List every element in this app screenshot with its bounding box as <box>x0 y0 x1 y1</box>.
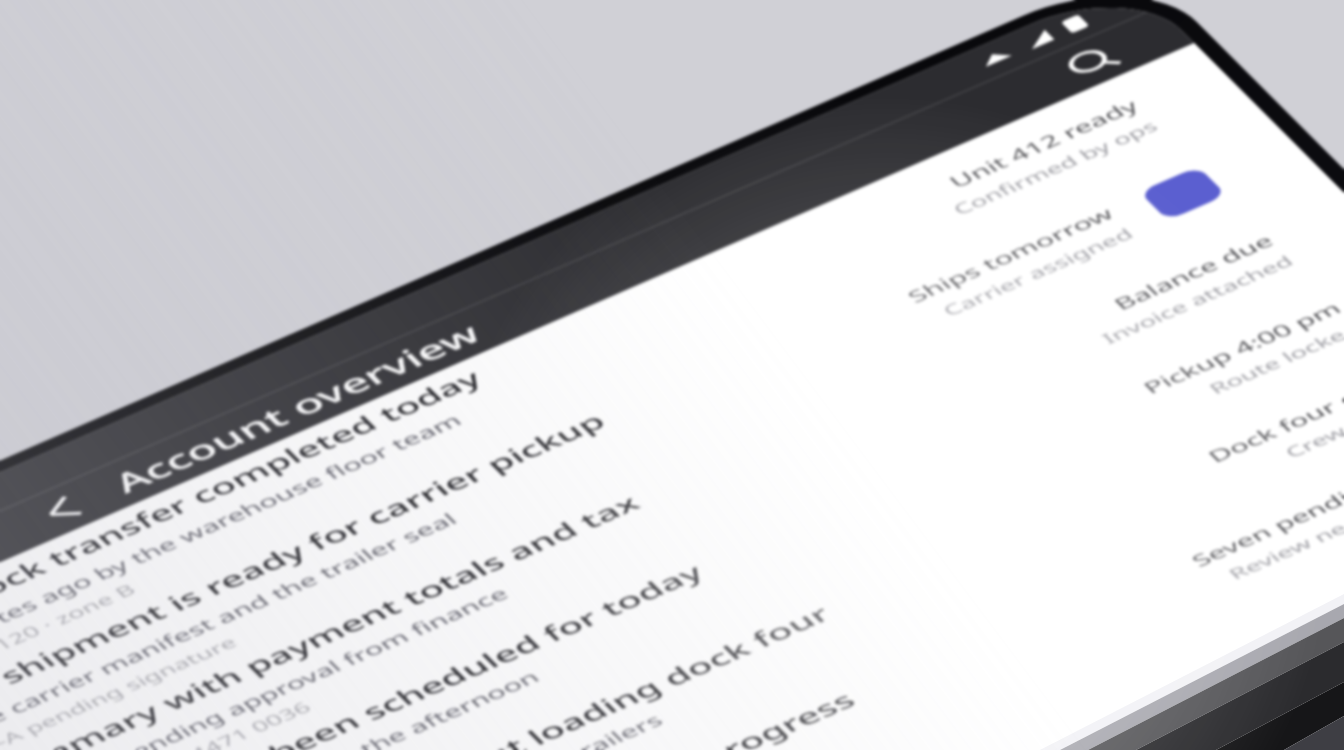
staticText: Order summary with payment totals and ta… <box>0 484 681 750</box>
staticText: Inbound delivery is waiting at loading d… <box>0 595 873 750</box>
button[interactable]: Outbound shipment is ready for carrier p… <box>0 99 1344 750</box>
staticText: Tracking number 9812 4471 0036 <box>0 694 333 750</box>
button[interactable]: Carrier pickup has been scheduled for to… <box>0 234 1344 750</box>
staticText: Pickup 4:00 pm <box>1128 294 1344 401</box>
staticText: Confirmed by ops <box>1343 518 1344 626</box>
staticText: Scheduled for today at four in the after… <box>0 662 570 750</box>
button[interactable]: Returns queue review is currently in pro… <box>0 369 1344 750</box>
button[interactable]: Warehouse stock transfer completed today <box>0 437 1344 750</box>
staticText: Updated 12 minutes ago by the warehouse … <box>0 406 498 725</box>
button[interactable]: Order summary with payment totals and ta… <box>0 167 1344 750</box>
staticText: Eighteen pallets arriving on two separat… <box>12 706 696 750</box>
button[interactable]: Warehouse stock transfer completed today <box>0 32 1331 750</box>
staticText: Unit 412 ready <box>934 92 1152 195</box>
button[interactable]: Inbound delivery is waiting at loading d… <box>0 302 1344 750</box>
button[interactable]: Outbound shipment is ready for carrier p… <box>60 504 1344 750</box>
staticText: Three items are pending approval from fi… <box>0 579 540 750</box>
button[interactable]: Inbound delivery is waiting at loading d… <box>263 707 1344 750</box>
staticText: Account overview <box>87 311 506 505</box>
staticText: Manifest 77-A pending signature <box>0 629 259 750</box>
staticText: Invoice attached <box>1088 248 1307 350</box>
staticText: Outbound shipment is ready for carrier p… <box>0 402 648 750</box>
staticText: Warehouse stock transfer completed today <box>0 359 521 705</box>
staticText: Crew on site <box>1273 383 1344 464</box>
button[interactable]: Open order <box>1136 161 1229 225</box>
staticText: Unit 412 ready <box>1339 497 1344 600</box>
staticText: Reference SKU 48120 · zone B <box>0 577 156 743</box>
button[interactable]: Back <box>22 483 100 537</box>
button[interactable]: Search <box>1053 35 1132 89</box>
staticText: Route locked <box>1197 316 1344 401</box>
staticText: Returns queue review is currently in pro… <box>46 681 897 750</box>
staticText: Awaiting the carrier manifest and the tr… <box>0 505 489 750</box>
staticText: Confirmed by ops <box>938 113 1172 221</box>
staticText: Dock four open <box>1193 362 1344 470</box>
button[interactable]: Order summary with payment totals and ta… <box>128 572 1344 750</box>
staticText: Carrier pickup has been scheduled for to… <box>0 553 744 750</box>
staticText: Review needed <box>1215 491 1344 586</box>
button[interactable]: Carrier pickup has been scheduled for to… <box>195 639 1344 750</box>
staticText: Ships tomorrow <box>892 199 1128 310</box>
staticText: Balance due <box>1100 227 1286 317</box>
staticText: Seven pending <box>1177 469 1344 574</box>
staticText: Carrier assigned <box>929 221 1147 323</box>
